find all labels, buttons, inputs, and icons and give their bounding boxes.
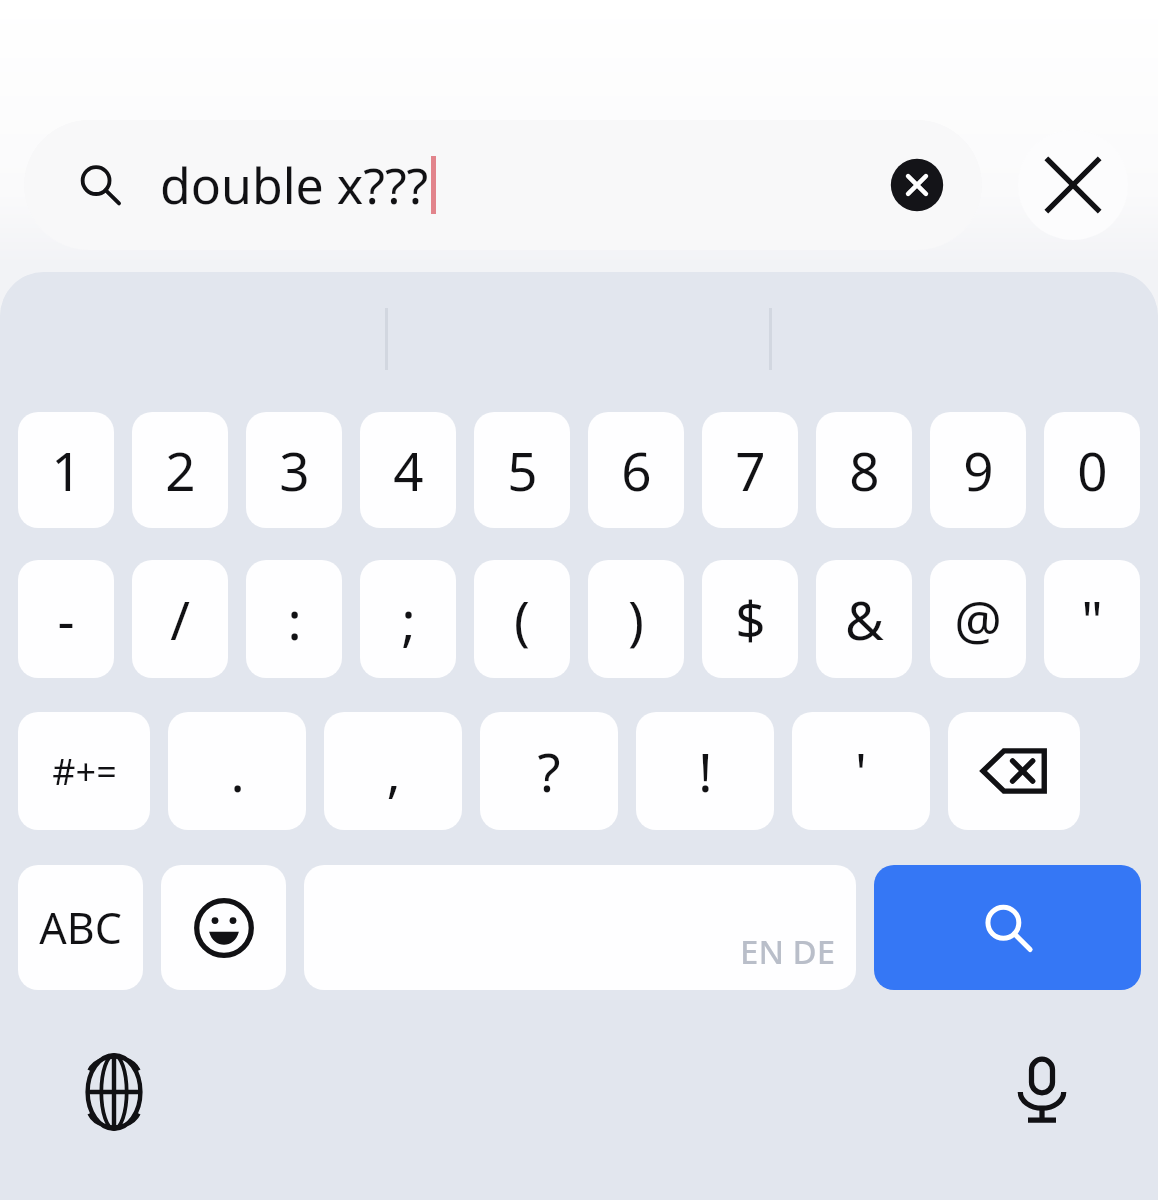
button[interactable]: Close — [1018, 130, 1128, 240]
button[interactable]: 1 — [18, 412, 114, 528]
staticText: & — [845, 583, 884, 655]
button[interactable]: 0 — [1044, 412, 1140, 528]
button[interactable]: 4 — [360, 412, 456, 528]
staticText: / — [170, 583, 190, 655]
button[interactable]: : — [246, 560, 342, 678]
staticText: ? — [537, 735, 561, 807]
button[interactable]: 7 — [702, 412, 798, 528]
button[interactable]: 2 — [132, 412, 228, 528]
staticText: 7 — [735, 434, 766, 506]
staticText: 9 — [963, 434, 994, 506]
button[interactable]: . — [168, 712, 306, 830]
button[interactable]: ABC — [18, 865, 143, 990]
button[interactable]: ! — [636, 712, 774, 830]
button[interactable]: 3 — [246, 412, 342, 528]
button[interactable]: Voice input — [1000, 1048, 1084, 1132]
staticText: double x??? — [160, 151, 429, 219]
button[interactable]: , — [324, 712, 462, 830]
staticText: 2 — [165, 434, 196, 506]
staticText: ! — [698, 735, 713, 807]
button[interactable]: 5 — [474, 412, 570, 528]
button[interactable]: ? — [480, 712, 618, 830]
button[interactable]: Backspace — [948, 712, 1080, 830]
button[interactable]: Change language — [72, 1050, 156, 1134]
button[interactable]: 9 — [930, 412, 1026, 528]
staticText: 3 — [279, 434, 310, 506]
button[interactable]: Emoji — [161, 865, 286, 990]
button[interactable]: / — [132, 560, 228, 678]
staticText: . — [230, 735, 245, 807]
staticText: 0 — [1077, 434, 1108, 506]
button[interactable]: Space — [304, 865, 856, 990]
staticText: 1 — [51, 434, 82, 506]
staticText: ABC — [39, 898, 122, 957]
staticText: EN DE — [740, 929, 836, 974]
staticText: 6 — [621, 434, 652, 506]
button[interactable]: double x??? — [24, 120, 982, 250]
button[interactable]: 8 — [816, 412, 912, 528]
staticText: - — [57, 583, 75, 655]
staticText: ( — [514, 583, 530, 655]
staticText: ; — [401, 583, 416, 655]
button[interactable]: ) — [588, 560, 684, 678]
button[interactable]: " — [1044, 560, 1140, 678]
button[interactable]: ' — [792, 712, 930, 830]
button[interactable]: - — [18, 560, 114, 678]
button[interactable]: Search — [874, 865, 1141, 990]
button[interactable]: Clear text — [890, 158, 944, 212]
button[interactable]: $ — [702, 560, 798, 678]
staticText: 4 — [393, 434, 424, 506]
button[interactable]: 6 — [588, 412, 684, 528]
staticText: ' — [855, 735, 867, 807]
staticText: ) — [628, 583, 644, 655]
staticText: 5 — [507, 434, 538, 506]
staticText: @ — [954, 583, 1002, 655]
button[interactable]: & — [816, 560, 912, 678]
staticText: #+= — [52, 747, 117, 796]
staticText: 8 — [849, 434, 880, 506]
staticText: , — [386, 735, 401, 807]
staticText: $ — [735, 583, 766, 655]
button[interactable]: ; — [360, 560, 456, 678]
button[interactable]: ( — [474, 560, 570, 678]
button[interactable]: @ — [930, 560, 1026, 678]
staticText: : — [287, 583, 302, 655]
staticText: " — [1081, 583, 1103, 655]
button[interactable]: #+= — [18, 712, 150, 830]
